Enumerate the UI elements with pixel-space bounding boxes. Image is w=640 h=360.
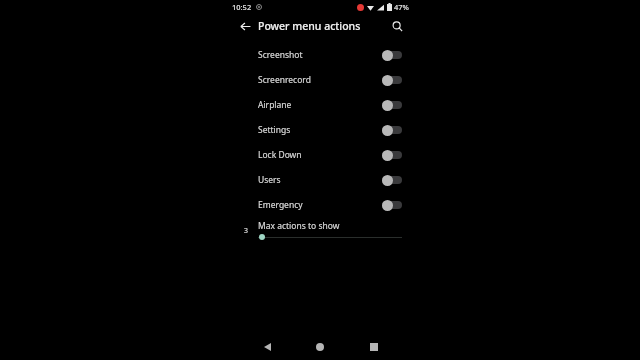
staticText: Screenrecord	[258, 74, 382, 86]
staticText: Power menu actions	[258, 19, 361, 33]
button[interactable]: Home	[309, 336, 331, 358]
button[interactable]: Search	[388, 17, 406, 35]
staticText: 3	[241, 225, 251, 235]
button[interactable]: Back	[236, 17, 254, 35]
staticText: Airplane	[258, 99, 382, 111]
button[interactable]: Airplane	[224, 92, 416, 117]
staticText: Max actions to show	[258, 220, 340, 232]
button[interactable]: Screenshot	[224, 42, 416, 67]
button[interactable]: Back	[256, 336, 278, 358]
button[interactable]: Recent apps	[363, 336, 385, 358]
button[interactable]: Users	[224, 167, 416, 192]
staticText: Lock Down	[258, 149, 382, 161]
button[interactable]: Settings	[224, 117, 416, 142]
staticText: Screenshot	[258, 49, 382, 61]
button[interactable]: Emergency	[224, 192, 416, 217]
staticText: Emergency	[258, 199, 382, 211]
button[interactable]: Screenrecord	[224, 67, 416, 92]
staticText: 47%	[394, 2, 409, 12]
staticText: Settings	[258, 124, 382, 136]
button[interactable]: Lock Down	[224, 142, 416, 167]
staticText: Users	[258, 174, 382, 186]
button[interactable]: Max actions to show slider	[258, 231, 402, 243]
staticText: 10:52	[232, 2, 252, 12]
